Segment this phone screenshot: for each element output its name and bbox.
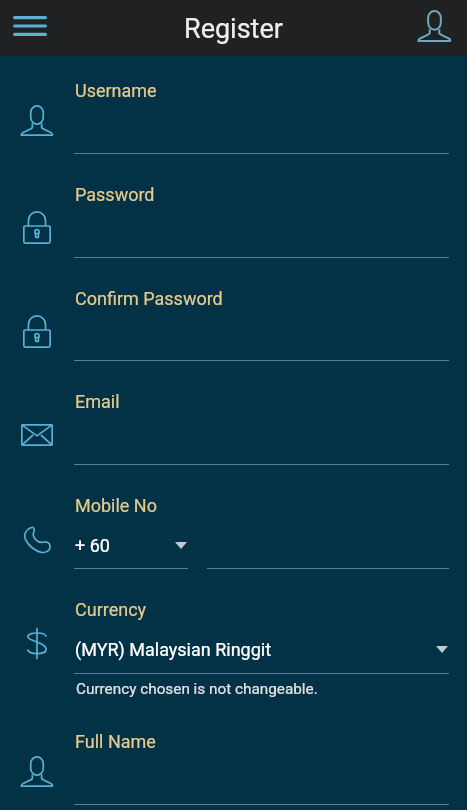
staticText: Email (75, 391, 120, 412)
button[interactable]: (MYR) Malaysian Ringgit (74, 627, 449, 667)
button[interactable]: Email (74, 381, 449, 471)
staticText: Full Name (75, 731, 156, 752)
button[interactable]: Full Name (74, 721, 449, 810)
staticText: Confirm Password (75, 288, 223, 309)
button[interactable]: Open navigation menu (1, 4, 57, 48)
button[interactable]: Confirm Password (74, 278, 449, 367)
staticText: Register (184, 13, 283, 45)
button[interactable]: Password (74, 174, 449, 264)
button[interactable]: Username (74, 70, 449, 160)
staticText: (MYR) Malaysian Ringgit (75, 639, 272, 660)
button[interactable]: + 60 (74, 523, 188, 561)
staticText: Password (75, 184, 155, 205)
staticText: Currency (75, 599, 147, 620)
staticText: Mobile No (75, 495, 157, 516)
staticText: Username (75, 80, 157, 101)
staticText: Currency chosen is not changeable. (76, 680, 318, 698)
button[interactable]: Profile (406, 3, 464, 53)
staticText: + 60 (75, 535, 110, 556)
